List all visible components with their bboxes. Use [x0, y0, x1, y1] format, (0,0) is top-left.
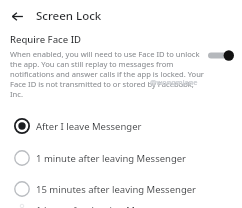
staticText: When enabled, you will need to use Face …	[10, 49, 204, 99]
staticText: @wongmjane	[150, 78, 198, 88]
button[interactable]: 15 minutes after leaving Messenger	[0, 174, 242, 204]
button[interactable]: Back	[6, 5, 28, 27]
button[interactable]: 1 minute after leaving Messenger	[0, 143, 242, 173]
staticText: Screen Lock	[36, 8, 102, 24]
staticText: Require Face ID	[10, 33, 81, 46]
button[interactable]: Require Face ID toggle	[208, 49, 234, 62]
button[interactable]: 1 hour after leaving Messenger	[0, 204, 242, 208]
staticText: 1 hour after leaving Messenger	[36, 204, 176, 208]
button[interactable]: After I leave Messenger	[0, 111, 242, 141]
staticText: 1 minute after leaving Messenger	[36, 152, 187, 165]
staticText: After I leave Messenger	[36, 120, 142, 133]
staticText: 15 minutes after leaving Messenger	[36, 183, 197, 196]
